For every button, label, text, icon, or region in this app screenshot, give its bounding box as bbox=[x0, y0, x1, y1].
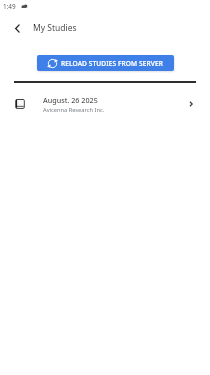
staticText: August. 26 2025 bbox=[43, 95, 98, 105]
staticText: Avicenna Research Inc. bbox=[43, 106, 105, 114]
staticText: My Studies bbox=[33, 22, 77, 34]
button[interactable]: RELOAD STUDIES FROM SERVER bbox=[37, 55, 174, 71]
staticText: RELOAD STUDIES FROM SERVER bbox=[61, 59, 164, 68]
staticText: 1:49 bbox=[3, 2, 16, 11]
button[interactable]: Navigate up bbox=[4, 15, 30, 41]
button[interactable]: August. 26 2025 bbox=[0, 90, 210, 118]
